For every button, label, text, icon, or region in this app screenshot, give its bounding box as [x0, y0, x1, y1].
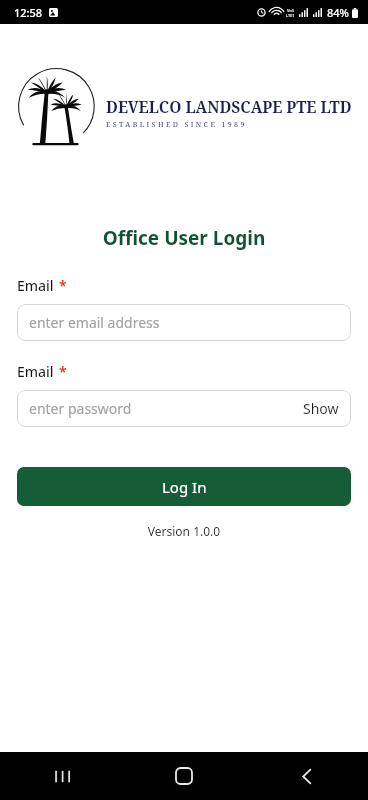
staticText: * [59, 276, 67, 295]
staticText: ESTABLISHED SINCE 1989 [106, 120, 247, 130]
button[interactable]: enter email address [17, 304, 351, 341]
staticText: DEVELCO LANDSCAPE PTE LTD [106, 96, 352, 117]
staticText: * [59, 362, 67, 381]
button[interactable]: Show [303, 399, 339, 418]
staticText: VoS [287, 8, 294, 13]
staticText: Email [17, 276, 54, 295]
staticText: Email [17, 362, 54, 381]
staticText: enter email address [29, 313, 339, 332]
staticText: 12:58 [14, 5, 43, 20]
button[interactable]: enter password [17, 390, 351, 427]
staticText: Log In [162, 477, 207, 497]
staticText: 84% [327, 5, 349, 20]
button[interactable]: Recent apps [0, 752, 122, 800]
staticText: enter password [29, 399, 303, 418]
staticText: LTE1 [286, 13, 295, 18]
staticText: Office User Login [0, 225, 368, 251]
button[interactable]: Home [122, 752, 245, 800]
button[interactable]: Back [245, 752, 368, 800]
button[interactable]: Log In [17, 467, 351, 506]
staticText: Version 1.0.0 [0, 523, 368, 539]
